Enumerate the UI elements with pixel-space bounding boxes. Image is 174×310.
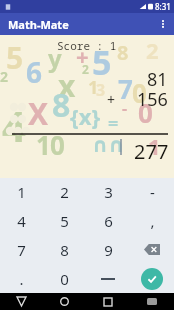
button[interactable]: 3 (86, 178, 130, 206)
button[interactable]: Back (0, 293, 43, 310)
button[interactable]: 9 (86, 235, 130, 264)
staticText: + (107, 90, 116, 109)
staticText: 8 (117, 39, 129, 66)
staticText: 2 (60, 182, 69, 202)
button[interactable]: Hide keyboard (130, 293, 174, 310)
staticText: 156 (137, 87, 168, 112)
staticText: - (150, 182, 155, 202)
button[interactable]: 0 (43, 264, 86, 293)
staticText: - (122, 97, 128, 119)
staticText: ∩∩ (92, 133, 125, 156)
button[interactable]: . (0, 264, 43, 293)
staticText: 8 (52, 83, 71, 127)
staticText: 1 (88, 75, 99, 100)
staticText: 0 (60, 269, 69, 289)
staticText: 4 (2, 97, 27, 154)
staticText: 9 (104, 240, 113, 260)
button[interactable]: More options (152, 13, 174, 35)
staticText: 8 (60, 240, 69, 260)
staticText: 3 (96, 79, 106, 101)
button[interactable]: Recent apps (86, 293, 130, 310)
button[interactable]: 6 (86, 206, 130, 235)
staticText: 7 (118, 71, 133, 106)
staticText: 1 (148, 131, 161, 161)
button[interactable]: 5 (43, 206, 86, 235)
button[interactable]: , (130, 206, 174, 235)
button[interactable]: Backspace (130, 235, 174, 264)
button[interactable]: Home (43, 293, 86, 310)
button[interactable]: 7 (0, 235, 43, 264)
staticText: , (150, 211, 155, 231)
button[interactable]: 4 (0, 206, 43, 235)
button[interactable]: - (130, 178, 174, 206)
staticText: 3 (104, 182, 113, 202)
button[interactable] (86, 264, 130, 293)
staticText: 0 (50, 127, 65, 162)
button[interactable]: 8 (43, 235, 86, 264)
button[interactable]: 1 (0, 178, 43, 206)
staticText: 81 (147, 67, 168, 92)
staticText: 5 (92, 39, 112, 85)
button[interactable]: 2 (43, 178, 86, 206)
staticText: 2 (146, 35, 159, 65)
staticText: 5 (60, 211, 69, 231)
staticText: 4 (17, 211, 26, 231)
staticText: . (19, 269, 24, 289)
staticText: {x} (70, 101, 101, 131)
staticText: 1 (17, 182, 26, 202)
staticText: 0 (138, 95, 153, 130)
staticText: 8:31 (155, 1, 171, 12)
staticText: 6 (26, 53, 43, 91)
staticText: y (48, 41, 62, 74)
staticText: 5 (6, 37, 24, 78)
staticText: 1 (36, 127, 51, 162)
staticText: 7 (17, 240, 26, 260)
staticText: 277 (134, 138, 169, 165)
staticText: 2 (0, 67, 9, 86)
staticText: + (76, 41, 89, 71)
staticText: 0 (132, 75, 147, 110)
staticText: X (28, 93, 49, 134)
staticText: 6 (104, 211, 113, 231)
staticText: Math-Mate (8, 17, 69, 32)
staticText: Score : 1 (57, 38, 117, 53)
staticText: 2 (82, 61, 89, 77)
staticText: x (58, 65, 76, 106)
staticText: = (108, 111, 119, 136)
button[interactable]: Submit answer (130, 264, 174, 293)
